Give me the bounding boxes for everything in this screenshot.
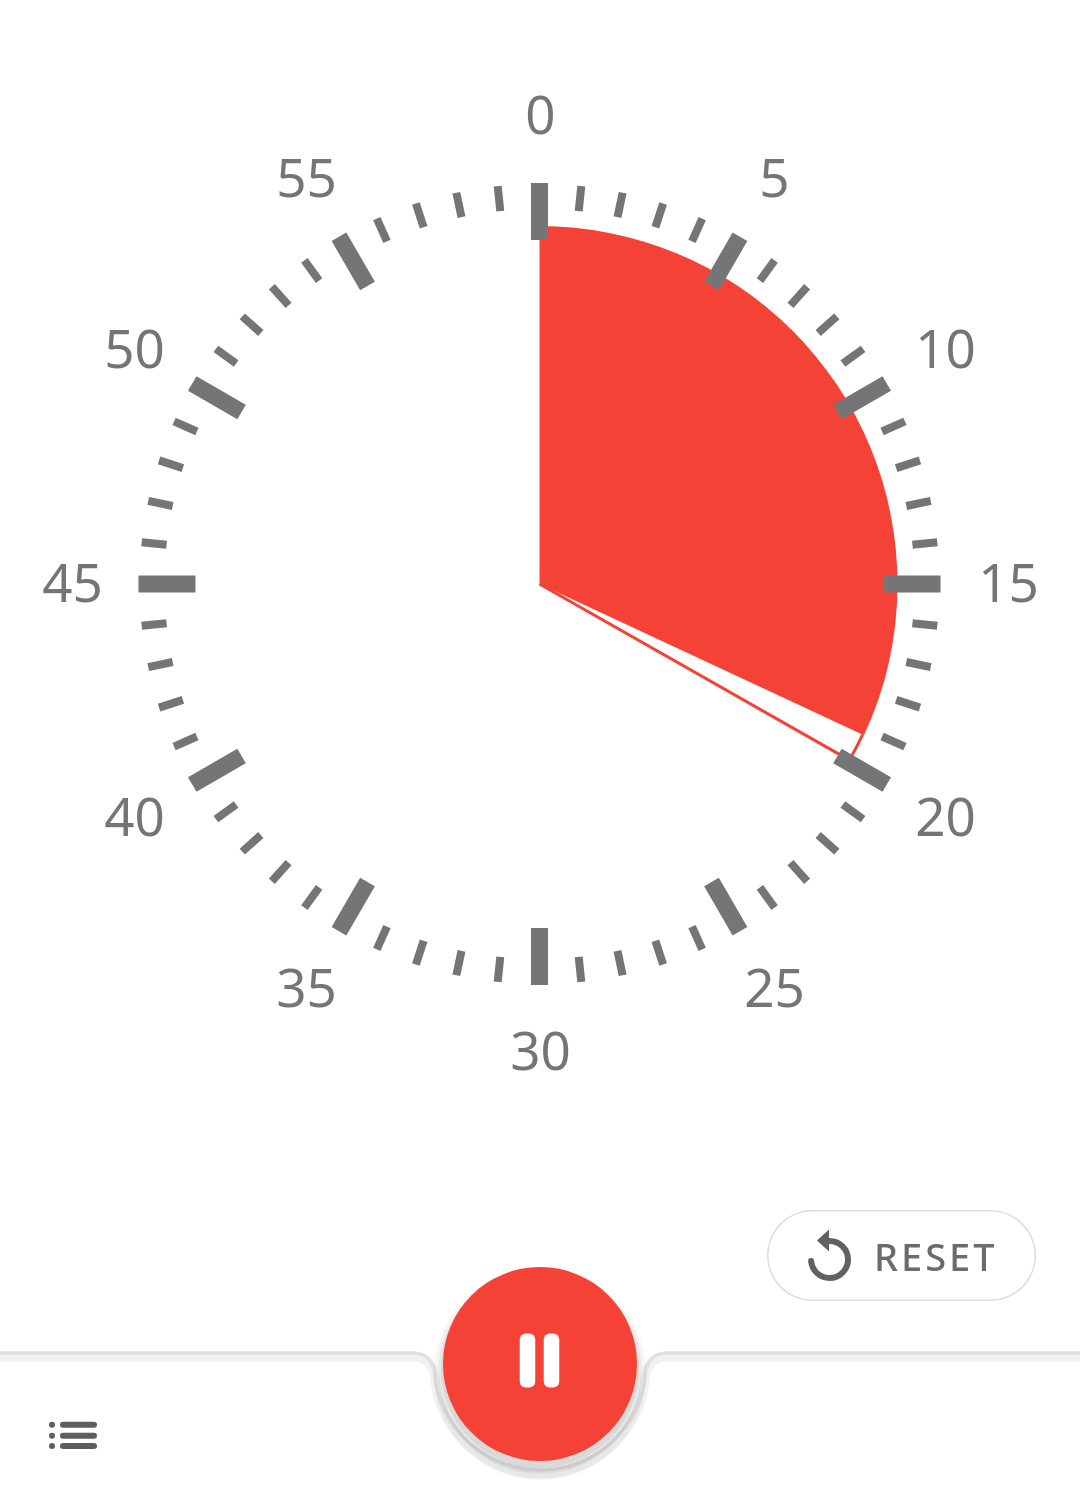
staticText: RESET bbox=[874, 1230, 998, 1282]
staticText: 55 bbox=[276, 140, 337, 212]
staticText: 20 bbox=[915, 779, 976, 851]
staticText: 30 bbox=[510, 1013, 571, 1085]
staticText: 10 bbox=[915, 311, 976, 383]
staticText: 45 bbox=[42, 545, 103, 617]
staticText: 25 bbox=[744, 950, 805, 1022]
staticText: 5 bbox=[759, 140, 790, 212]
staticText: 50 bbox=[104, 311, 165, 383]
staticText: 15 bbox=[978, 545, 1039, 617]
button[interactable] bbox=[443, 1267, 637, 1461]
staticText: 40 bbox=[104, 779, 165, 851]
staticText: 0 bbox=[525, 77, 556, 149]
button[interactable] bbox=[38, 1410, 110, 1462]
button[interactable]: RESET bbox=[767, 1210, 1036, 1301]
staticText: 35 bbox=[276, 950, 337, 1022]
